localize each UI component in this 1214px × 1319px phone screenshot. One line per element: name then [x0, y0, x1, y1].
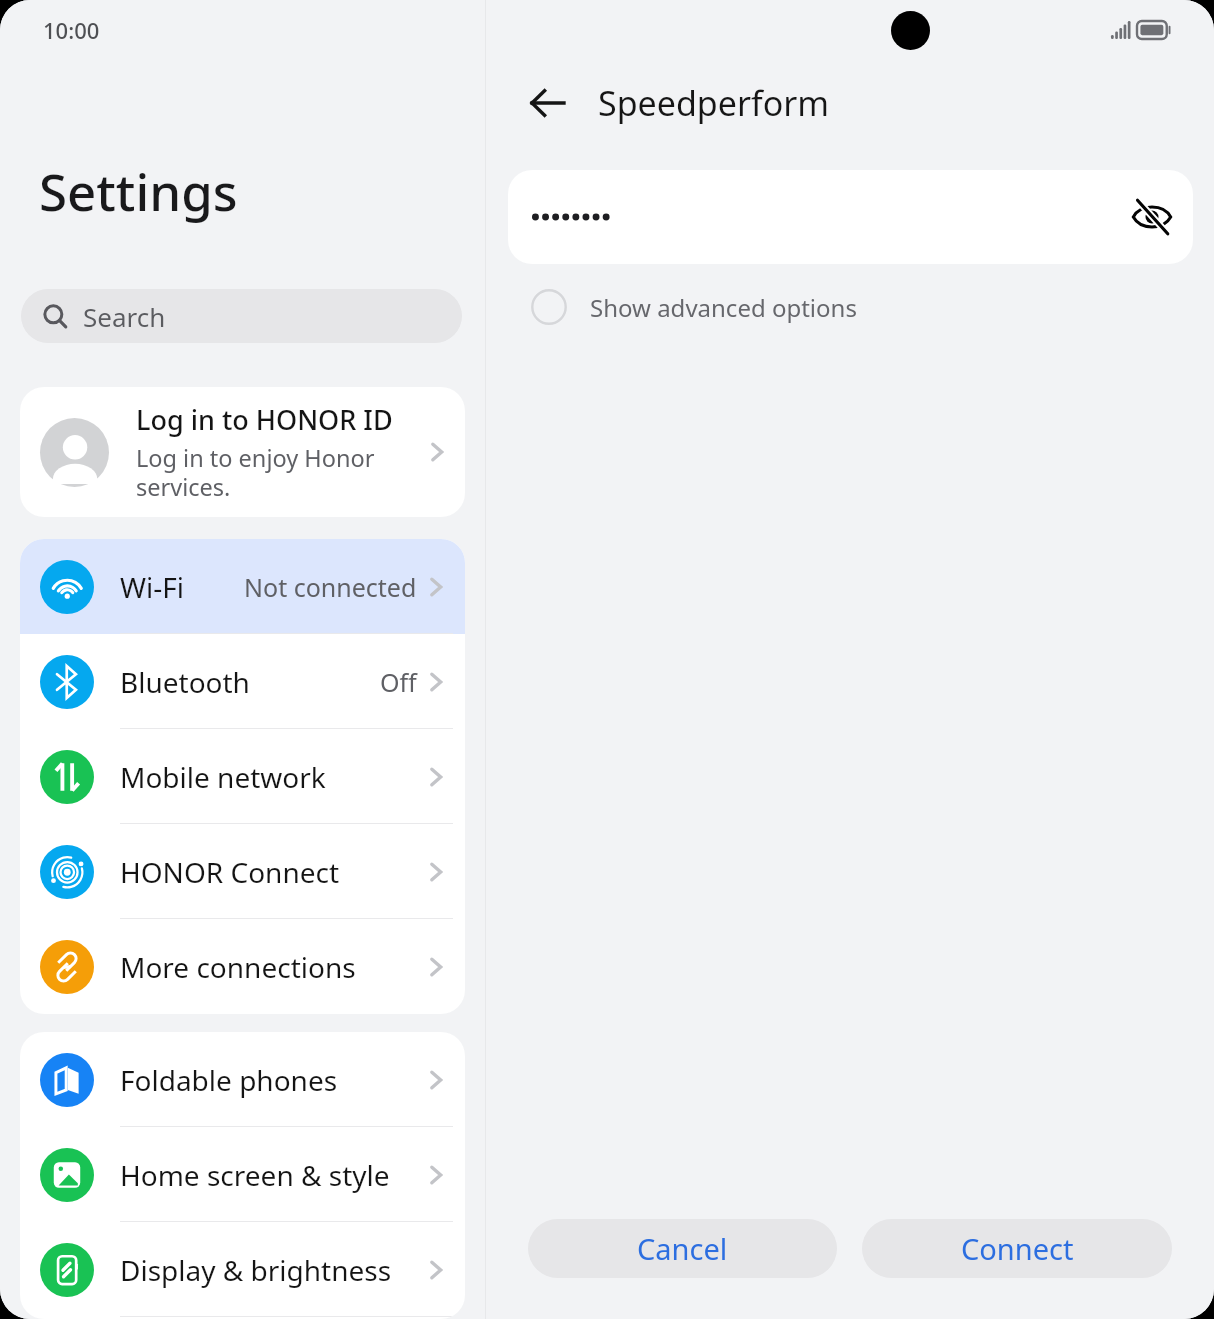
- staticText: Log in to HONOR ID: [136, 401, 393, 438]
- staticText: Log in to enjoy Honor services.: [136, 442, 375, 503]
- button[interactable]: Show advanced options: [531, 289, 857, 325]
- button[interactable]: Connect: [862, 1219, 1172, 1278]
- button[interactable]: Mobile network: [20, 729, 465, 824]
- staticText: Not connected: [244, 570, 417, 604]
- button[interactable]: Wi-Fi: [20, 539, 465, 634]
- button[interactable]: Log in to HONOR ID: [20, 387, 465, 517]
- button[interactable]: More connections: [20, 919, 465, 1014]
- staticText: Off: [380, 665, 417, 699]
- staticText: Wi-Fi: [120, 568, 185, 606]
- button[interactable]: Show password: [508, 170, 1193, 264]
- button[interactable]: Display & brightness: [20, 1222, 465, 1317]
- staticText: Foldable phones: [120, 1061, 338, 1099]
- button[interactable]: Foldable phones: [20, 1032, 465, 1127]
- staticText: Home screen & style: [120, 1156, 390, 1194]
- button[interactable]: Back: [524, 79, 572, 127]
- staticText: Connect: [961, 1229, 1074, 1268]
- button[interactable]: Show password: [1123, 188, 1181, 246]
- staticText: Mobile network: [120, 758, 326, 796]
- staticText: More connections: [120, 948, 356, 986]
- button[interactable]: Bluetooth: [20, 634, 465, 729]
- staticText: Speedperform: [598, 80, 830, 126]
- staticText: HONOR Connect: [120, 853, 340, 891]
- button[interactable]: Search: [21, 289, 462, 343]
- button[interactable]: Cancel: [528, 1219, 837, 1278]
- button[interactable]: Home screen & style: [20, 1127, 465, 1222]
- staticText: 10:00: [43, 15, 100, 45]
- button[interactable]: HONOR Connect: [20, 824, 465, 919]
- staticText: Search: [83, 299, 166, 334]
- staticText: Settings: [39, 156, 238, 225]
- staticText: Display & brightness: [120, 1251, 392, 1289]
- staticText: Bluetooth: [120, 663, 250, 701]
- staticText: Show advanced options: [590, 291, 857, 324]
- staticText: Cancel: [637, 1229, 728, 1268]
